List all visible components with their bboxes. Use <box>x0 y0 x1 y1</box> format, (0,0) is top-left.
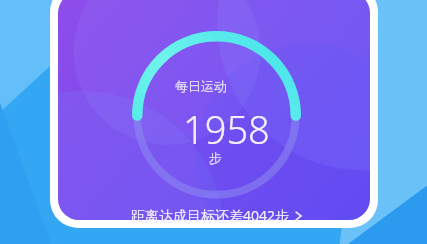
staticText: 1958 <box>183 103 270 155</box>
staticText: 距离达成目标还差4042步 <box>131 206 290 225</box>
button[interactable]: 距离达成目标还差4042步 <box>131 206 304 225</box>
other: 查看详情 <box>293 209 304 223</box>
button[interactable] <box>58 0 370 220</box>
staticText: 步 <box>209 150 222 166</box>
staticText: 每日运动 <box>175 78 227 94</box>
